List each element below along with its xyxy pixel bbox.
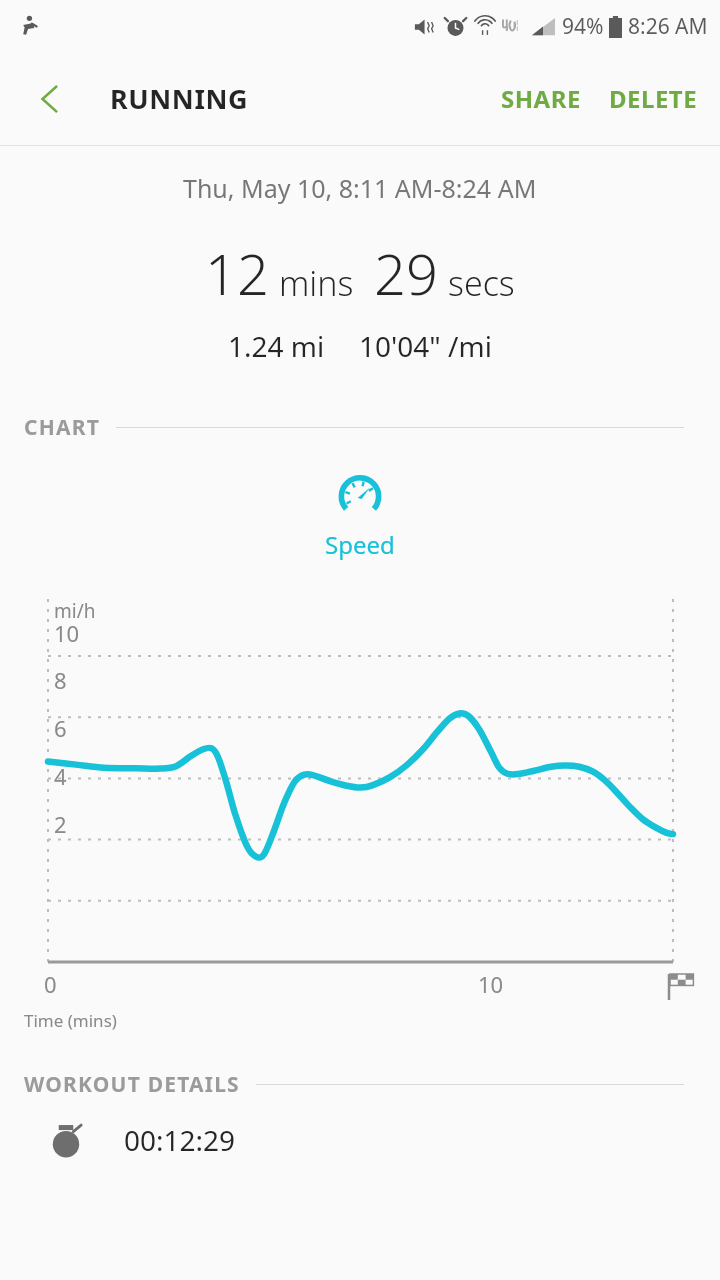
other: Speed — [333, 464, 387, 518]
button[interactable]: DELETE — [595, 70, 720, 127]
staticText: WORKOUT DETAILS — [24, 1070, 240, 1099]
button[interactable]: Duration — [0, 1121, 720, 1181]
staticText: secs — [448, 260, 515, 306]
staticText: Speed — [325, 528, 395, 561]
staticText: 94% — [562, 12, 604, 41]
staticText: 4 — [54, 761, 67, 791]
staticText: 00:12:29 — [124, 1121, 236, 1159]
staticText: Thu, May 10, 8:11 AM-8:24 AM — [183, 171, 537, 205]
staticText: 2 — [54, 809, 67, 839]
staticText: 0 — [44, 969, 57, 999]
staticText: RUNNING — [110, 80, 249, 117]
button[interactable]: SHARE — [487, 70, 595, 127]
staticText: 8:26 AM — [628, 12, 708, 41]
staticText: 10 — [478, 969, 504, 999]
button[interactable]: Back — [22, 71, 78, 127]
staticText: 1.24 mi — [228, 327, 325, 365]
button[interactable]: Speed — [0, 464, 720, 561]
staticText: DELETE — [609, 82, 698, 115]
staticText: mi/h — [54, 598, 96, 624]
staticText: 12 — [205, 235, 269, 311]
staticText: CHART — [24, 413, 100, 442]
staticText: 8 — [54, 665, 67, 695]
staticText: 29 — [374, 235, 438, 311]
staticText: 10 — [54, 618, 80, 648]
other: Duration — [48, 1121, 88, 1161]
staticText: 6 — [54, 713, 67, 743]
staticText: 10'04" /mi — [359, 327, 492, 365]
staticText: SHARE — [501, 82, 581, 115]
staticText: Time (mins) — [24, 1009, 117, 1032]
staticText: mins — [279, 260, 354, 306]
